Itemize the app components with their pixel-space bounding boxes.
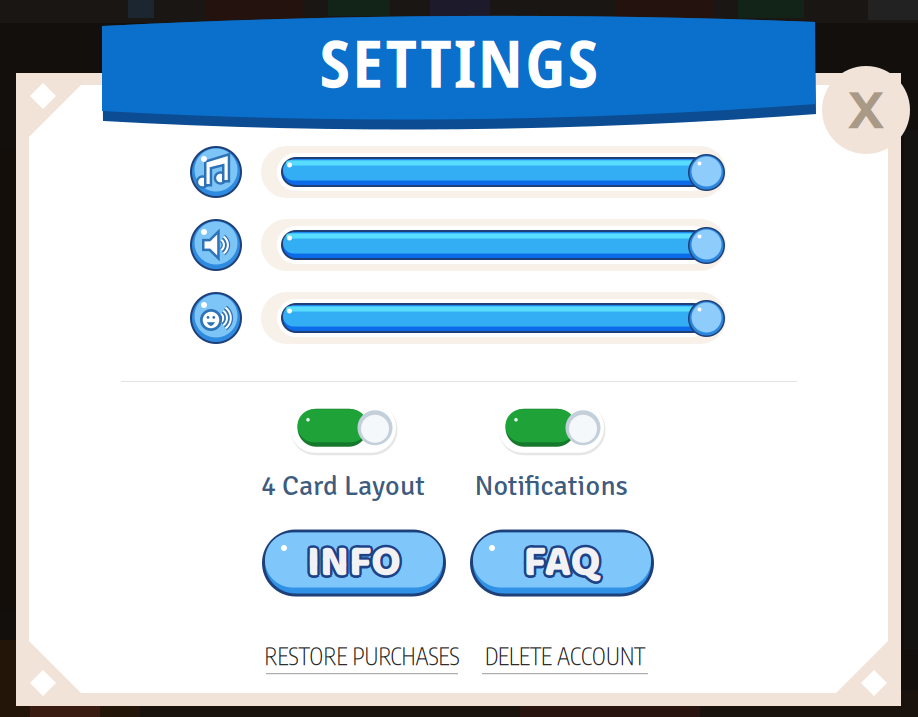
staticText: FAQ	[523, 529, 600, 597]
button[interactable]: RESTORE PURCHASES	[264, 642, 459, 674]
staticText: INFO	[307, 529, 401, 597]
staticText: INFO	[305, 527, 399, 595]
button[interactable]: Sound effects volume	[188, 217, 244, 273]
button[interactable]: Voice volume	[188, 290, 244, 346]
button[interactable]: DELETE ACCOUNT	[482, 642, 648, 674]
staticText: FAQ	[525, 527, 602, 595]
staticText: INFO	[307, 531, 401, 600]
staticText: FAQ	[523, 526, 600, 595]
button[interactable]: Close	[822, 66, 910, 154]
staticText: RESTORE PURCHASES	[264, 642, 459, 670]
button[interactable]: 4 Card Layout	[261, 401, 425, 503]
button[interactable]: FAQ	[467, 526, 657, 599]
staticText: INFO	[309, 531, 403, 599]
staticText: FAQ	[522, 527, 599, 595]
staticText: 4 Card Layout	[261, 469, 425, 503]
button[interactable]: INFO	[259, 526, 449, 599]
staticText: INFO	[310, 529, 404, 597]
staticText: Notifications	[474, 469, 627, 503]
staticText: INFO	[307, 526, 401, 595]
button[interactable]: Notifications	[474, 401, 627, 503]
button[interactable]: Music volume	[188, 144, 244, 200]
staticText: FAQ	[523, 531, 600, 600]
staticText: FAQ	[521, 529, 598, 597]
staticText: INFO	[309, 527, 403, 595]
staticText: INFO	[304, 529, 398, 597]
staticText: FAQ	[522, 531, 599, 599]
staticText: INFO	[305, 531, 399, 599]
staticText: FAQ	[526, 529, 603, 597]
staticText: FAQ	[525, 531, 602, 599]
staticText: SETTINGS	[319, 17, 599, 107]
staticText: DELETE ACCOUNT	[485, 642, 645, 670]
staticText: X	[848, 79, 884, 141]
